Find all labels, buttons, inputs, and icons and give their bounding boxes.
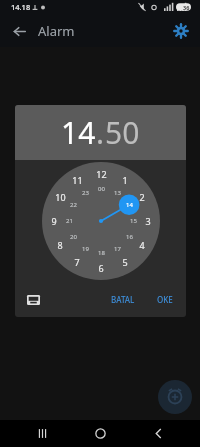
staticText: 17 <box>114 245 121 253</box>
staticText: 12 <box>96 168 107 180</box>
button[interactable]: BATAL <box>106 290 140 309</box>
staticText: 10 <box>55 191 66 203</box>
button[interactable]: OKE <box>152 290 178 309</box>
staticText: 8 <box>57 239 63 251</box>
staticText: 19 <box>82 245 89 253</box>
staticText: 00 <box>98 185 105 193</box>
button[interactable]: Back <box>142 420 174 447</box>
staticText: 14 <box>126 201 133 209</box>
button[interactable]: Clock dial, 14:50 <box>42 162 160 280</box>
staticText: 13 <box>114 189 121 197</box>
button[interactable]: Recent apps <box>26 420 58 447</box>
staticText: BATAL <box>111 294 135 305</box>
staticText: Alarm <box>38 22 75 40</box>
staticText: 36 <box>183 4 190 11</box>
button[interactable]: Add alarm <box>158 380 192 414</box>
staticText: 3 <box>145 215 151 227</box>
staticText: 7 <box>74 256 80 268</box>
staticText: 16 <box>126 233 133 241</box>
staticText: 21 <box>66 217 73 225</box>
staticText: 6 <box>98 262 104 274</box>
staticText: 18 <box>98 249 105 257</box>
button[interactable]: Settings <box>168 18 194 44</box>
staticText: 14.18 <box>11 2 31 12</box>
staticText: 20 <box>70 233 77 241</box>
staticText: . <box>96 112 105 153</box>
staticText: 2 <box>139 191 145 203</box>
staticText: 9 <box>51 215 57 227</box>
staticText: 4 <box>139 239 145 251</box>
button[interactable]: Back <box>6 18 32 44</box>
button[interactable]: 14 <box>61 112 96 153</box>
button[interactable]: 50 <box>105 112 140 153</box>
staticText: 15 <box>130 217 137 225</box>
staticText: 22 <box>70 201 77 209</box>
staticText: 1 <box>122 174 128 186</box>
staticText: OKE <box>157 294 173 305</box>
button[interactable]: Home <box>84 420 116 447</box>
staticText: 11 <box>72 174 83 186</box>
staticText: 5 <box>122 256 128 268</box>
staticText: 23 <box>82 189 89 197</box>
button[interactable]: Switch to keyboard input <box>21 288 45 312</box>
